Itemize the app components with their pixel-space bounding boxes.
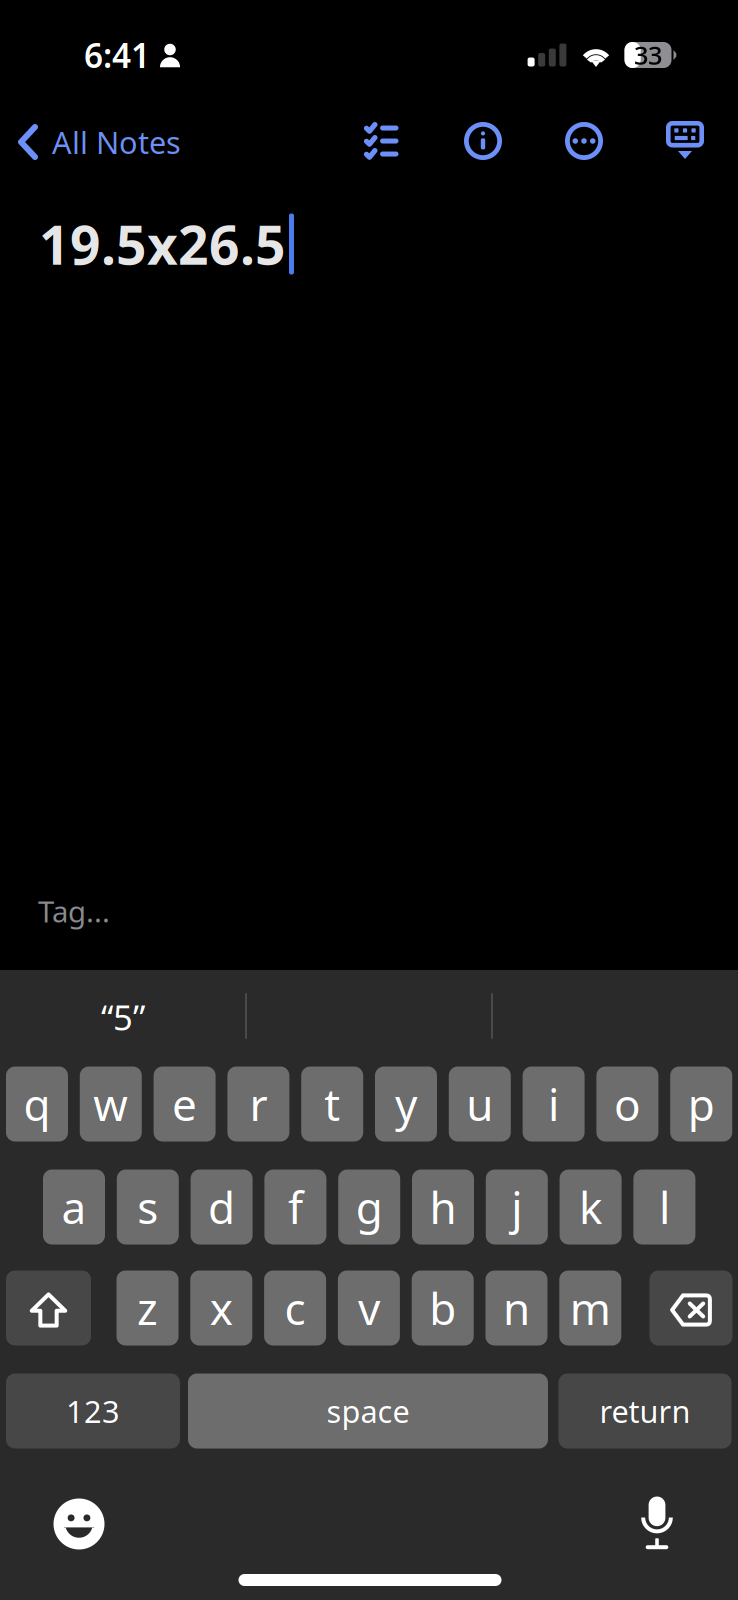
- staticText: x: [210, 1279, 233, 1337]
- button[interactable]: f: [264, 1169, 326, 1244]
- staticText: o: [614, 1075, 641, 1133]
- button[interactable]: d: [191, 1169, 253, 1244]
- staticText: g: [356, 1178, 383, 1236]
- button[interactable]: k: [560, 1169, 622, 1244]
- staticText: w: [93, 1075, 128, 1133]
- staticText: j: [511, 1178, 522, 1236]
- staticText: d: [208, 1178, 235, 1236]
- staticText: 19.5x26.5: [39, 209, 286, 279]
- button[interactable]: More: [547, 108, 621, 174]
- button[interactable]: r: [227, 1066, 289, 1141]
- button[interactable]: Delete: [649, 1270, 732, 1345]
- button[interactable]: i: [523, 1066, 585, 1141]
- button[interactable]: v: [338, 1270, 400, 1345]
- button[interactable]: m: [559, 1270, 621, 1345]
- staticText: c: [285, 1279, 306, 1337]
- staticText: space: [326, 1391, 409, 1431]
- staticText: u: [466, 1075, 493, 1133]
- staticText: y: [395, 1075, 417, 1133]
- button[interactable]: x: [190, 1270, 252, 1345]
- button[interactable]: Numbers: [6, 1373, 180, 1448]
- button[interactable]: y: [375, 1066, 437, 1141]
- button[interactable]: return: [558, 1373, 731, 1448]
- button[interactable]: h: [412, 1169, 474, 1244]
- button[interactable]: Shift: [6, 1270, 91, 1345]
- button[interactable]: s: [117, 1169, 179, 1244]
- staticText: All Notes: [52, 122, 181, 162]
- staticText: e: [172, 1075, 197, 1133]
- button[interactable]: a: [43, 1169, 105, 1244]
- button[interactable]: Hide Keyboard: [648, 107, 722, 173]
- staticText: i: [548, 1075, 559, 1133]
- button[interactable]: l: [633, 1169, 695, 1244]
- staticText: v: [358, 1279, 380, 1337]
- staticText: t: [324, 1075, 340, 1133]
- staticText: h: [429, 1178, 456, 1236]
- button[interactable]: Info: [446, 108, 520, 174]
- button[interactable]: All Notes: [18, 110, 278, 174]
- button[interactable]: c: [264, 1270, 326, 1345]
- staticText: Tag...: [38, 891, 110, 930]
- button[interactable]: t: [301, 1066, 363, 1141]
- staticText: m: [570, 1279, 611, 1337]
- button[interactable]: e: [154, 1066, 216, 1141]
- staticText: “5”: [101, 994, 145, 1040]
- button[interactable]: w: [80, 1066, 142, 1141]
- staticText: 123: [66, 1391, 120, 1431]
- staticText: a: [61, 1178, 86, 1236]
- button[interactable]: b: [412, 1270, 474, 1345]
- button[interactable]: Dictation: [617, 1482, 697, 1562]
- button[interactable]: j: [486, 1169, 548, 1244]
- button[interactable]: Checklist: [344, 108, 418, 174]
- button[interactable]: Emoji: [39, 1484, 119, 1564]
- staticText: 33: [634, 38, 662, 72]
- button[interactable]: “5”: [0, 984, 246, 1050]
- button[interactable]: space: [188, 1373, 548, 1448]
- staticText: return: [599, 1391, 690, 1431]
- button[interactable]: q: [6, 1066, 68, 1141]
- staticText: r: [249, 1075, 267, 1133]
- staticText: f: [288, 1178, 303, 1236]
- staticText: k: [579, 1178, 602, 1236]
- staticText: q: [23, 1075, 50, 1133]
- staticText: l: [659, 1178, 670, 1236]
- button[interactable]: g: [338, 1169, 400, 1244]
- staticText: 6:41: [84, 33, 150, 77]
- button[interactable]: u: [449, 1066, 511, 1141]
- staticText: z: [137, 1279, 158, 1337]
- button[interactable]: o: [596, 1066, 658, 1141]
- button[interactable]: n: [485, 1270, 547, 1345]
- staticText: s: [137, 1178, 158, 1236]
- staticText: p: [688, 1075, 715, 1133]
- staticText: n: [503, 1279, 530, 1337]
- button[interactable]: z: [116, 1270, 178, 1345]
- staticText: b: [429, 1279, 456, 1337]
- button[interactable]: p: [670, 1066, 732, 1141]
